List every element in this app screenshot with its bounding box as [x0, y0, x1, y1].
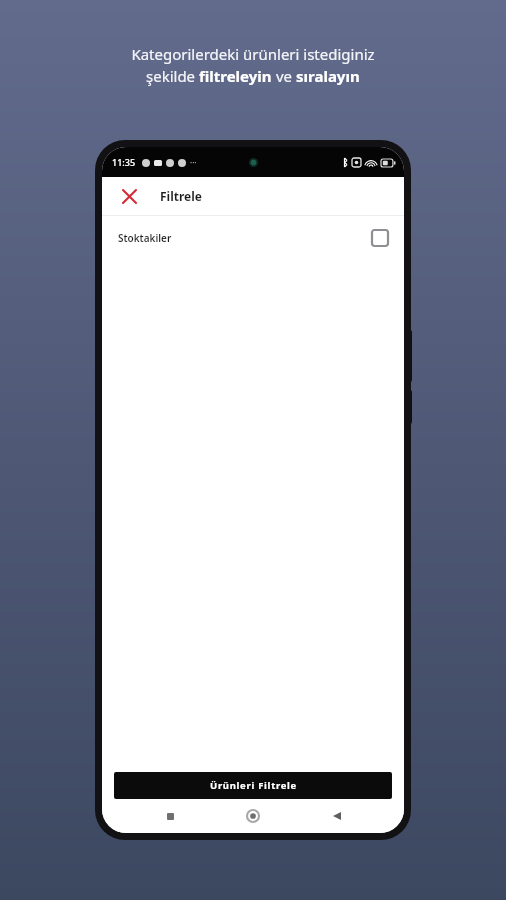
- staticText: ···: [190, 157, 197, 168]
- button[interactable]: Recents: [154, 800, 186, 832]
- button[interactable]: Back: [321, 800, 353, 832]
- button[interactable]: Ürünleri Filtrele: [114, 772, 392, 799]
- staticText: 11:35: [112, 156, 136, 168]
- staticText: ve: [272, 66, 296, 86]
- button[interactable]: Stoktakiler: [102, 216, 404, 260]
- staticText: Stoktakiler: [118, 231, 172, 245]
- button[interactable]: Home: [237, 800, 269, 832]
- staticText: Ürünleri Filtrele: [210, 779, 297, 792]
- staticText: şekilde: [146, 66, 199, 86]
- staticText: Filtrele: [160, 188, 202, 204]
- button[interactable]: Kapat: [116, 183, 142, 209]
- staticText: sıralayın: [296, 66, 360, 86]
- staticText: Kategorilerdeki ürünleri istediginiz: [131, 44, 375, 64]
- staticText: filtreleyin: [199, 66, 272, 86]
